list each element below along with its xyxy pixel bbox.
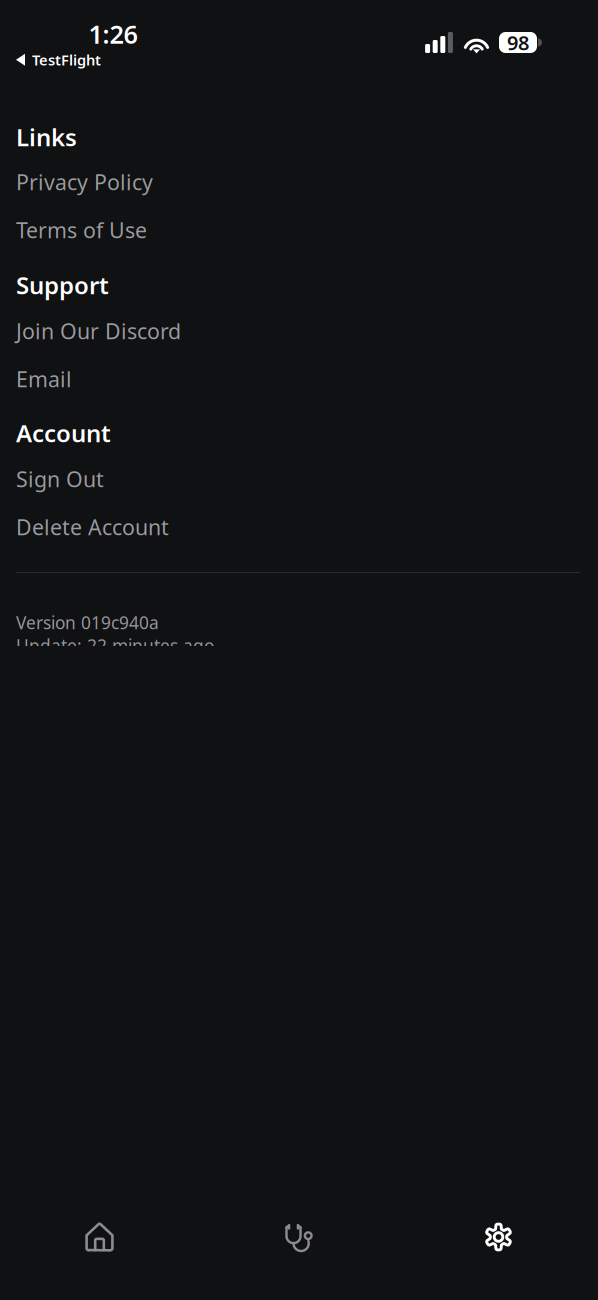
staticText: TestFlight xyxy=(32,50,101,69)
button[interactable]: Privacy Policy xyxy=(16,167,582,197)
staticText: Privacy Policy xyxy=(16,168,153,196)
staticText: Terms of Use xyxy=(16,216,147,244)
button[interactable]: Scans xyxy=(199,1206,399,1268)
staticText: Email xyxy=(16,365,72,393)
button[interactable]: Terms of Use xyxy=(16,215,582,245)
staticText: Support xyxy=(16,269,109,301)
button[interactable]: Email xyxy=(16,364,582,394)
staticText: Account xyxy=(16,417,111,449)
staticText: Version 019c940a xyxy=(16,611,159,634)
button[interactable]: Join Our Discord xyxy=(16,316,582,346)
staticText: 98 xyxy=(507,29,529,56)
button[interactable]: Delete Account xyxy=(16,512,582,542)
staticText: 1:26 xyxy=(88,17,137,51)
staticText: Links xyxy=(16,121,77,153)
button[interactable]: Sign Out xyxy=(16,464,582,494)
button[interactable]: Settings xyxy=(399,1206,598,1268)
staticText: Join Our Discord xyxy=(16,317,181,345)
button[interactable]: Home xyxy=(0,1206,199,1268)
staticText: Sign Out xyxy=(16,465,104,493)
staticText: Delete Account xyxy=(16,513,169,541)
staticText: Update: 22 minutes ago xyxy=(16,634,214,657)
